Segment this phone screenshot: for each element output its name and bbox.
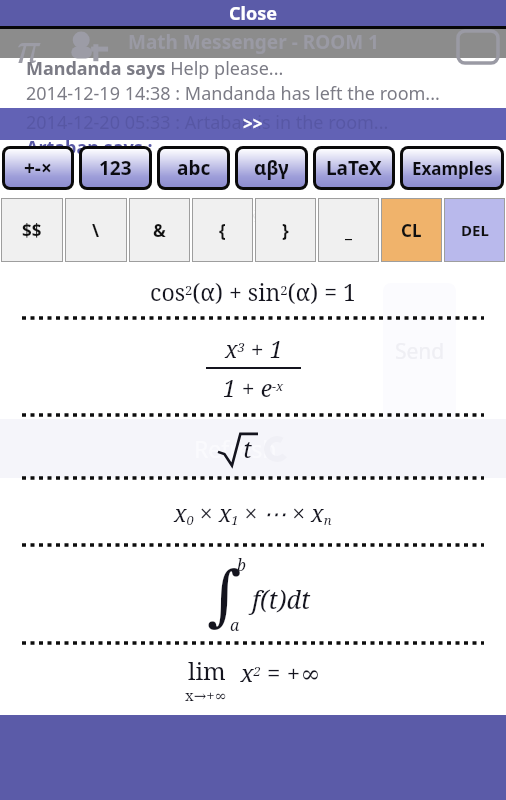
button[interactable]: & xyxy=(130,199,189,261)
button[interactable]: _ xyxy=(319,199,378,261)
staticText: Artaban says : xyxy=(26,135,153,160)
staticText: a xyxy=(230,614,240,636)
button[interactable]: b xyxy=(0,547,506,643)
staticText: ∫ xyxy=(207,557,242,634)
staticText: x0 × x1 × ⋯ × xn xyxy=(174,497,332,528)
staticText: & xyxy=(153,219,166,242)
button[interactable]: { xyxy=(193,199,252,261)
staticText: t xyxy=(243,432,252,465)
button[interactable]: cos2(α) + sin2(α) = 1 xyxy=(0,265,506,318)
button[interactable]: Examples xyxy=(403,149,501,187)
staticText: : Help please... xyxy=(156,56,284,81)
staticText: n(1 + x)≡₀ c xyxy=(192,200,309,229)
button[interactable]: LaTeX xyxy=(316,149,392,187)
staticText: lim xyxy=(188,654,226,687)
staticText: } xyxy=(282,219,289,242)
button[interactable]: Refresh xyxy=(0,419,506,478)
staticText: f(t)dt xyxy=(252,582,311,616)
button[interactable]: 123 xyxy=(82,149,149,187)
staticText: Close xyxy=(229,1,277,26)
button[interactable]: x0 × x1 × ⋯ × xn xyxy=(0,480,506,545)
staticText: abc xyxy=(177,155,211,181)
staticText: _ xyxy=(345,219,352,242)
staticText: \ xyxy=(92,219,100,242)
staticText: Mandanda says xyxy=(26,56,166,81)
staticText: { xyxy=(219,219,226,242)
staticText: Refresh xyxy=(194,433,277,464)
button[interactable]: \ xyxy=(66,199,126,261)
staticText: >> xyxy=(243,112,263,135)
button[interactable]: abc xyxy=(160,149,227,187)
staticText: DEL xyxy=(461,220,489,240)
staticText: b xyxy=(237,554,246,576)
button[interactable]: lim xyxy=(0,645,506,715)
staticText: Examples xyxy=(412,157,493,180)
staticText: 1 + e−x xyxy=(223,372,284,403)
button[interactable]: DEL xyxy=(445,199,504,261)
staticText: π xyxy=(16,25,40,74)
button[interactable]: Close xyxy=(0,0,506,26)
button[interactable]: } xyxy=(256,199,315,261)
button[interactable]: $$ xyxy=(2,199,62,261)
staticText: +-× xyxy=(24,155,52,181)
staticText: 2014-12-20 05:33 : Artaban is in the roo… xyxy=(26,110,389,135)
staticText: αβγ xyxy=(254,155,289,181)
staticText: Send xyxy=(395,337,445,366)
staticText: x2 = +∞ xyxy=(228,656,321,689)
button[interactable]: +-× xyxy=(5,149,71,187)
staticText: x→+∞ xyxy=(185,685,228,705)
button[interactable]: x3 + 1 xyxy=(0,320,506,415)
staticText: cos2(α) + sin2(α) = 1 xyxy=(150,276,356,307)
staticText: 123 xyxy=(99,155,132,181)
staticText: x3 + 1 xyxy=(225,333,283,364)
button[interactable]: CL xyxy=(382,199,441,261)
staticText: LaTeX xyxy=(326,155,382,181)
staticText: CL xyxy=(401,219,422,242)
staticText: 2014-12-19 14:38 : Mandanda has left the… xyxy=(26,81,440,106)
button[interactable]: αβγ xyxy=(238,149,305,187)
staticText: $$ xyxy=(22,219,42,242)
staticText: Math Messenger - ROOM 1 xyxy=(128,29,379,55)
